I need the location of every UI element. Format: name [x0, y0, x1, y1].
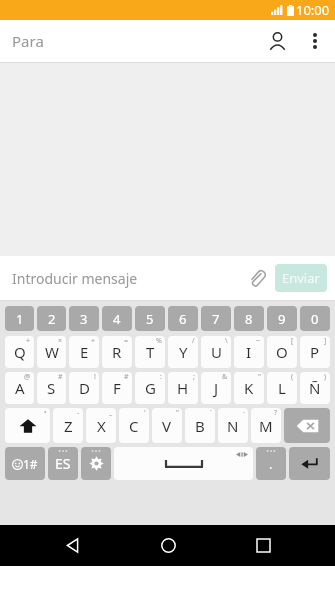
button[interactable]: Back — [49, 525, 95, 566]
staticText: \ — [225, 336, 228, 346]
button[interactable]: Attach file — [242, 263, 272, 293]
staticText: 4 — [113, 310, 121, 328]
button[interactable]: A — [5, 372, 34, 404]
button[interactable]: 3 — [69, 306, 99, 331]
button[interactable]: X — [86, 408, 116, 443]
staticText: ! — [94, 372, 96, 382]
staticText: : — [160, 372, 162, 382]
button[interactable]: D — [69, 372, 99, 404]
button[interactable]: R — [102, 336, 132, 368]
button[interactable]: S — [37, 372, 66, 404]
button[interactable]: Shift — [5, 408, 50, 443]
staticText: Enviar — [282, 269, 320, 287]
button[interactable]: 4 — [102, 306, 132, 331]
staticText: / — [192, 336, 195, 346]
button[interactable]: G — [135, 372, 165, 404]
staticText: . — [269, 455, 273, 473]
staticText: U — [211, 342, 222, 362]
button[interactable]: P — [300, 336, 330, 368]
staticText: # — [58, 372, 63, 382]
staticText: · — [243, 408, 245, 418]
staticText: I — [246, 342, 252, 362]
button[interactable]: T — [135, 336, 165, 368]
staticText: 10:00 — [296, 1, 330, 19]
button[interactable]: I — [234, 336, 264, 368]
staticText: ES — [55, 454, 71, 473]
button[interactable]: N — [218, 408, 248, 443]
button[interactable]: 5 — [135, 306, 165, 331]
staticText: × — [58, 336, 63, 346]
button[interactable]: Ñ — [300, 372, 330, 404]
staticText: J — [214, 378, 219, 398]
button[interactable]: B — [185, 408, 215, 443]
button[interactable]: Z — [53, 408, 83, 443]
staticText: O — [276, 342, 288, 362]
button[interactable]: 7 — [201, 306, 231, 331]
button[interactable]: O — [267, 336, 297, 368]
staticText: 1 — [16, 310, 24, 328]
staticText: Introducir mensaje — [12, 269, 138, 288]
button[interactable]: K — [234, 372, 264, 404]
staticText: 3 — [80, 310, 88, 328]
staticText: Y — [179, 342, 188, 362]
staticText: ` — [210, 408, 212, 418]
staticText: R — [112, 342, 122, 362]
button[interactable]: 9 — [267, 306, 297, 331]
button[interactable]: ES — [48, 447, 78, 480]
button[interactable]: Recent apps — [240, 525, 286, 566]
button[interactable]: C — [119, 408, 149, 443]
staticText: # — [124, 372, 129, 382]
staticText: E — [80, 342, 89, 362]
button[interactable]: Y — [168, 336, 198, 368]
staticText: L — [278, 378, 286, 398]
staticText: + — [26, 336, 31, 346]
staticText: @ — [24, 372, 31, 382]
staticText: 2 — [48, 310, 56, 328]
button[interactable]: 6 — [168, 306, 198, 331]
button[interactable]: Q — [5, 336, 34, 368]
staticText: K — [244, 378, 254, 398]
button[interactable]: 8 — [234, 306, 264, 331]
staticText: N — [227, 416, 239, 436]
staticText: _ — [109, 408, 113, 418]
staticText: W — [45, 342, 59, 362]
button[interactable]: Space — [114, 447, 253, 480]
button[interactable]: W — [37, 336, 66, 368]
staticText: Q — [14, 342, 26, 362]
button[interactable]: Home — [145, 525, 191, 566]
button[interactable]: 1 — [5, 306, 34, 331]
button[interactable]: F — [102, 372, 132, 404]
staticText: S — [47, 378, 56, 398]
staticText: ( — [291, 372, 294, 382]
button[interactable]: Keyboard settings — [81, 447, 111, 480]
staticText: ' — [144, 408, 146, 418]
button[interactable]: V — [152, 408, 182, 443]
button[interactable]: L — [267, 372, 297, 404]
button[interactable]: More options — [298, 24, 332, 58]
button[interactable]: Enter — [289, 447, 330, 480]
button[interactable]: Enviar — [275, 264, 327, 292]
button[interactable]: Add recipient — [256, 20, 298, 62]
button[interactable]: Backspace — [284, 408, 330, 443]
button[interactable]: 0 — [300, 306, 330, 331]
button[interactable]: E — [69, 336, 99, 368]
staticText: ? — [274, 408, 278, 418]
staticText: T — [146, 342, 155, 362]
staticText: C — [129, 416, 139, 436]
staticText: ; — [193, 372, 195, 382]
button[interactable]: Symbols and emoji — [5, 447, 45, 480]
button[interactable]: U — [201, 336, 231, 368]
staticText: = — [124, 336, 129, 346]
button[interactable]: M — [251, 408, 281, 443]
staticText: 5 — [146, 310, 154, 328]
staticText: % — [156, 336, 162, 346]
staticText: " — [258, 372, 261, 382]
staticText: X — [97, 416, 106, 436]
staticText: 1# — [23, 456, 38, 472]
button[interactable]: J — [201, 372, 231, 404]
button[interactable]: 2 — [37, 306, 66, 331]
staticText: 6 — [179, 310, 187, 328]
button[interactable]: H — [168, 372, 198, 404]
button[interactable]: . — [256, 447, 286, 480]
staticText: Para — [12, 31, 44, 51]
